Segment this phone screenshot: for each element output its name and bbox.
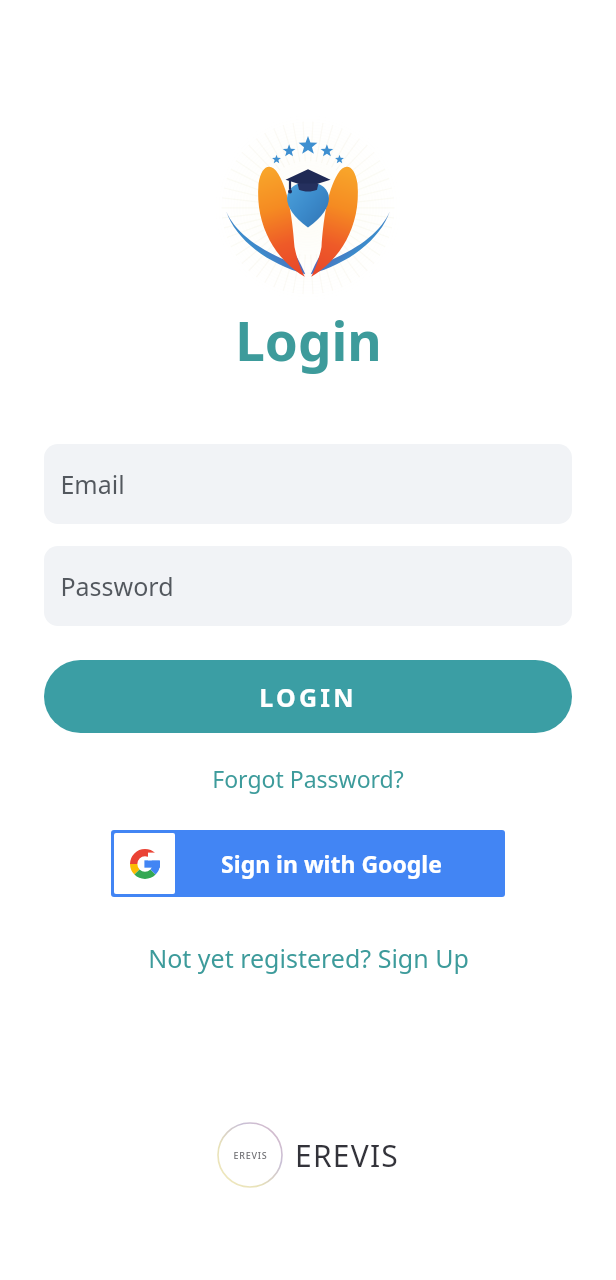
staticText: Not yet registered? Sign Up <box>148 941 469 975</box>
staticText: LOGIN <box>259 680 357 714</box>
button[interactable]: LOGIN <box>44 660 572 733</box>
button[interactable]: Password <box>44 546 572 626</box>
button[interactable]: Not yet registered? Sign Up <box>134 935 483 981</box>
staticText: Email <box>60 467 125 501</box>
staticText: EREVIS <box>233 1149 268 1161</box>
button[interactable]: Forgot Password? <box>198 757 418 800</box>
staticText: Sign in with Google <box>221 848 442 879</box>
button[interactable]: Sign in with Google <box>111 830 505 897</box>
staticText: EREVIS <box>295 1135 399 1176</box>
staticText: Forgot Password? <box>212 763 404 794</box>
staticText: Login <box>235 304 382 376</box>
button[interactable]: Email <box>44 444 572 524</box>
staticText: Password <box>60 569 174 603</box>
